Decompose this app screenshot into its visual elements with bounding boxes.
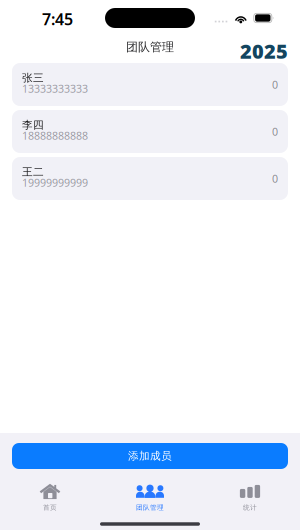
- button[interactable]: 首页: [0, 476, 100, 516]
- button[interactable]: 王二: [12, 157, 288, 200]
- staticText: 19999999999: [22, 175, 88, 190]
- staticText: 首页: [43, 503, 57, 512]
- staticText: 团队管理: [126, 40, 174, 54]
- staticText: 0: [272, 171, 278, 186]
- button[interactable]: 团队管理: [100, 476, 200, 516]
- staticText: 添加成员: [128, 449, 172, 462]
- staticText: 2025: [240, 38, 288, 64]
- button[interactable]: 张三: [12, 63, 288, 106]
- staticText: 18888888888: [22, 128, 88, 143]
- button[interactable]: 李四: [12, 110, 288, 153]
- staticText: 团队管理: [136, 503, 164, 512]
- staticText: 0: [272, 77, 278, 92]
- staticText: 0: [272, 124, 278, 139]
- staticText: 王二: [22, 165, 44, 178]
- staticText: 张三: [22, 71, 44, 84]
- button[interactable]: 添加成员: [12, 443, 288, 469]
- staticText: 李四: [22, 118, 44, 131]
- staticText: 统计: [243, 503, 257, 512]
- button[interactable]: 统计: [200, 476, 300, 516]
- staticText: 7:45: [42, 8, 73, 30]
- staticText: 13333333333: [22, 81, 88, 96]
